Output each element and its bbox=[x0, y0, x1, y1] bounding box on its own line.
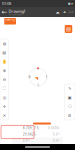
staticText: ☁ bbox=[55, 10, 59, 14]
button[interactable]: Pan bbox=[0, 57, 8, 66]
staticText: 8.709, 7.5 bbox=[23, 126, 39, 130]
button[interactable]: Zoom extents bbox=[0, 84, 8, 93]
button[interactable]: Zoom in bbox=[0, 66, 8, 75]
button[interactable]: Layers bbox=[0, 48, 8, 57]
button[interactable]: Settings bbox=[66, 111, 74, 120]
button[interactable]: Back bbox=[2, 7, 7, 17]
staticText: ⋯ bbox=[68, 9, 73, 15]
button[interactable]: Sync bbox=[54, 7, 60, 17]
staticText: ▾ bbox=[59, 140, 60, 142]
button[interactable]: Annotate bbox=[66, 102, 74, 111]
staticText: ⊖ bbox=[3, 77, 6, 82]
staticText: ✋ bbox=[2, 59, 7, 64]
staticText: ◍ bbox=[3, 41, 6, 46]
button[interactable]: Command line bbox=[65, 25, 72, 33]
staticText: ✎ bbox=[68, 86, 71, 91]
staticText: Drawing1 bbox=[4, 18, 16, 25]
staticText: ▣ bbox=[68, 95, 72, 100]
button[interactable]: 8.709, 7.5 bbox=[12, 125, 63, 131]
button[interactable]: Draw bbox=[66, 84, 74, 93]
staticText: ⏶ bbox=[63, 10, 66, 14]
staticText: 0.0000 bbox=[48, 126, 59, 130]
button[interactable]: 0.0° bbox=[12, 138, 63, 144]
button[interactable]: Orbit bbox=[0, 93, 8, 102]
staticText: ▤ bbox=[2, 50, 6, 55]
staticText: Personal drawings bbox=[8, 14, 22, 16]
button[interactable]: Object snap bbox=[0, 39, 8, 48]
staticText: ◎ bbox=[3, 95, 6, 100]
staticText: ⊕ bbox=[3, 68, 6, 73]
staticText: ⛶ bbox=[3, 86, 6, 90]
staticText: ◥ bbox=[35, 76, 38, 81]
staticText: 🗨 bbox=[67, 104, 72, 109]
staticText: ⚙ bbox=[68, 113, 72, 118]
staticText: 0.0° bbox=[53, 133, 59, 136]
button[interactable]: 29.0425 bbox=[12, 131, 63, 137]
staticText: ✕ bbox=[3, 113, 6, 118]
staticText: 01:08 bbox=[2, 1, 11, 6]
staticText: W bbox=[28, 75, 30, 79]
button[interactable]: Close bbox=[0, 111, 8, 120]
staticText: ← bbox=[1, 8, 7, 16]
staticText: ▮▮ ▰ bbox=[68, 2, 73, 5]
staticText: ▾ bbox=[29, 140, 30, 142]
staticText: 0.0° bbox=[53, 139, 59, 143]
button[interactable]: Zoom out bbox=[0, 75, 8, 84]
button[interactable]: Filter bbox=[62, 7, 67, 17]
button[interactable]: Blocks bbox=[66, 93, 74, 102]
staticText: 29.0425 bbox=[23, 133, 36, 136]
button[interactable]: More bbox=[68, 7, 73, 17]
staticText: ✛ bbox=[3, 104, 6, 109]
staticText: ▤ bbox=[66, 26, 71, 32]
button[interactable]: Measure bbox=[0, 102, 8, 111]
staticText: E bbox=[46, 75, 47, 79]
staticText: 0.0° bbox=[23, 139, 29, 143]
button[interactable]: Drawing1 bbox=[4, 18, 16, 25]
staticText: Drawing1 bbox=[8, 8, 25, 14]
